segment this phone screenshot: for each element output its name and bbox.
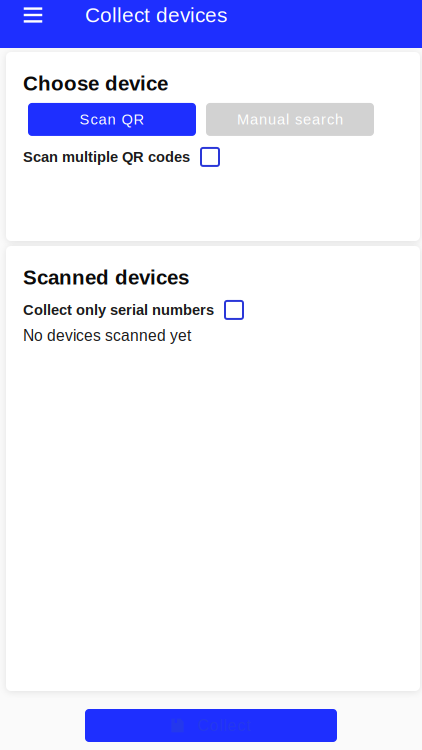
button[interactable]: S⁠ ⁠c⁠ ⁠a⁠ ⁠n⁠ ⁠ ⁠ ⁠Q⁠ ⁠R [28,103,196,136]
button[interactable]: Collect only serial numbers [23,301,243,319]
button[interactable]: M⁠ ⁠a⁠ ⁠n⁠ ⁠u⁠ ⁠a⁠ ⁠l⁠ ⁠ ⁠ ⁠s⁠ ⁠e⁠ ⁠a⁠ ⁠… [206,103,374,136]
staticText: Scan multiple QR codes [23,149,190,165]
staticText: M⁠ ⁠a⁠ ⁠n⁠ ⁠u⁠ ⁠a⁠ ⁠l⁠ ⁠ ⁠ ⁠s⁠ ⁠e⁠ ⁠a⁠ ⁠… [237,111,343,128]
staticText: Choose device [23,72,168,95]
staticText: Collect devices [85,3,227,27]
staticText: Collect only serial numbers [23,302,214,318]
button[interactable]: C⁠ ⁠o⁠ ⁠l⁠ ⁠l⁠ ⁠e⁠ ⁠c⁠ ⁠t [85,709,337,742]
staticText: Scanned devices [23,266,189,289]
staticText: No devices scanned yet [23,327,191,344]
staticText: S⁠ ⁠c⁠ ⁠a⁠ ⁠n⁠ ⁠ ⁠ ⁠Q⁠ ⁠R [79,111,144,128]
staticText: C⁠ ⁠o⁠ ⁠l⁠ ⁠l⁠ ⁠e⁠ ⁠c⁠ ⁠t [198,717,251,734]
button[interactable]: Open navigation menu [0,1,54,29]
button[interactable]: Scan multiple QR codes [23,148,219,166]
